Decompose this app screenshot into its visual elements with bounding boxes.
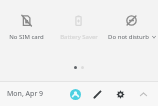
button[interactable]: No SIM card: [0, 14, 52, 41]
button[interactable]: Settings: [112, 86, 128, 102]
button[interactable]: Battery Saver: [52, 14, 105, 41]
staticText: Mon, Apr 9: [7, 89, 44, 99]
button[interactable]: Do not disturb: [105, 14, 158, 41]
button[interactable]: Edit: [89, 86, 105, 102]
staticText: No SIM card: [9, 33, 44, 41]
button[interactable]: Collapse: [135, 86, 151, 102]
button[interactable]: User account: [66, 85, 84, 103]
staticText: Battery Saver: [60, 33, 98, 41]
staticText: Do not disturb: [108, 33, 149, 41]
